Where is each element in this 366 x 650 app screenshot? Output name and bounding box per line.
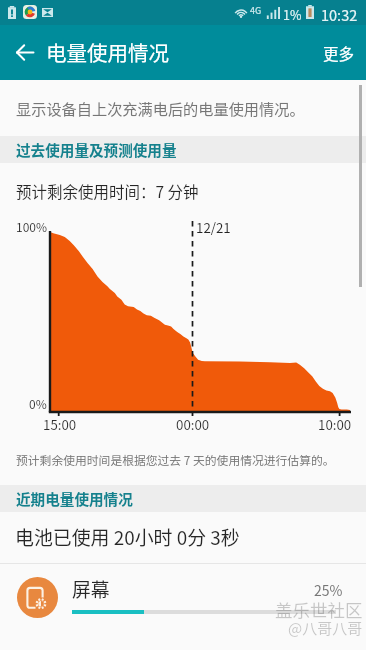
staticText: 1% xyxy=(283,5,302,23)
staticText: 15:00 xyxy=(43,415,77,434)
staticText: @八哥八哥 xyxy=(288,617,363,639)
staticText: 100% xyxy=(16,218,48,235)
staticText: 4G xyxy=(250,4,262,17)
staticText: 12/21 xyxy=(196,218,231,237)
staticText: 10:00 xyxy=(318,415,352,434)
staticText: 过去使用量及预测使用量 xyxy=(16,139,177,160)
staticText: 预计剩余使用时间是根据您过去 7 天的使用情况进行估算的。 xyxy=(16,451,335,468)
staticText: 25% xyxy=(314,580,343,600)
button[interactable]: 屏幕 xyxy=(0,564,366,636)
staticText: 10:32 xyxy=(321,4,358,25)
staticText: 显示设备自上次充满电后的电量使用情况。 xyxy=(16,97,305,119)
staticText: 电量使用情况 xyxy=(46,37,169,67)
staticText: 近期电量使用情况 xyxy=(16,488,133,509)
button[interactable]: 更多 xyxy=(313,25,366,80)
staticText: 更多 xyxy=(323,42,355,64)
staticText: 盖乐世社区 xyxy=(275,597,363,622)
staticText: 电池已使用 20小时 0分 3秒 xyxy=(15,523,240,550)
staticText: 屏幕 xyxy=(72,575,110,602)
button[interactable]: 返回 xyxy=(0,25,48,80)
staticText: 0% xyxy=(29,395,47,412)
staticText: 00:00 xyxy=(176,415,210,434)
staticText: 预计剩余使用时间：7 分钟 xyxy=(16,180,199,202)
